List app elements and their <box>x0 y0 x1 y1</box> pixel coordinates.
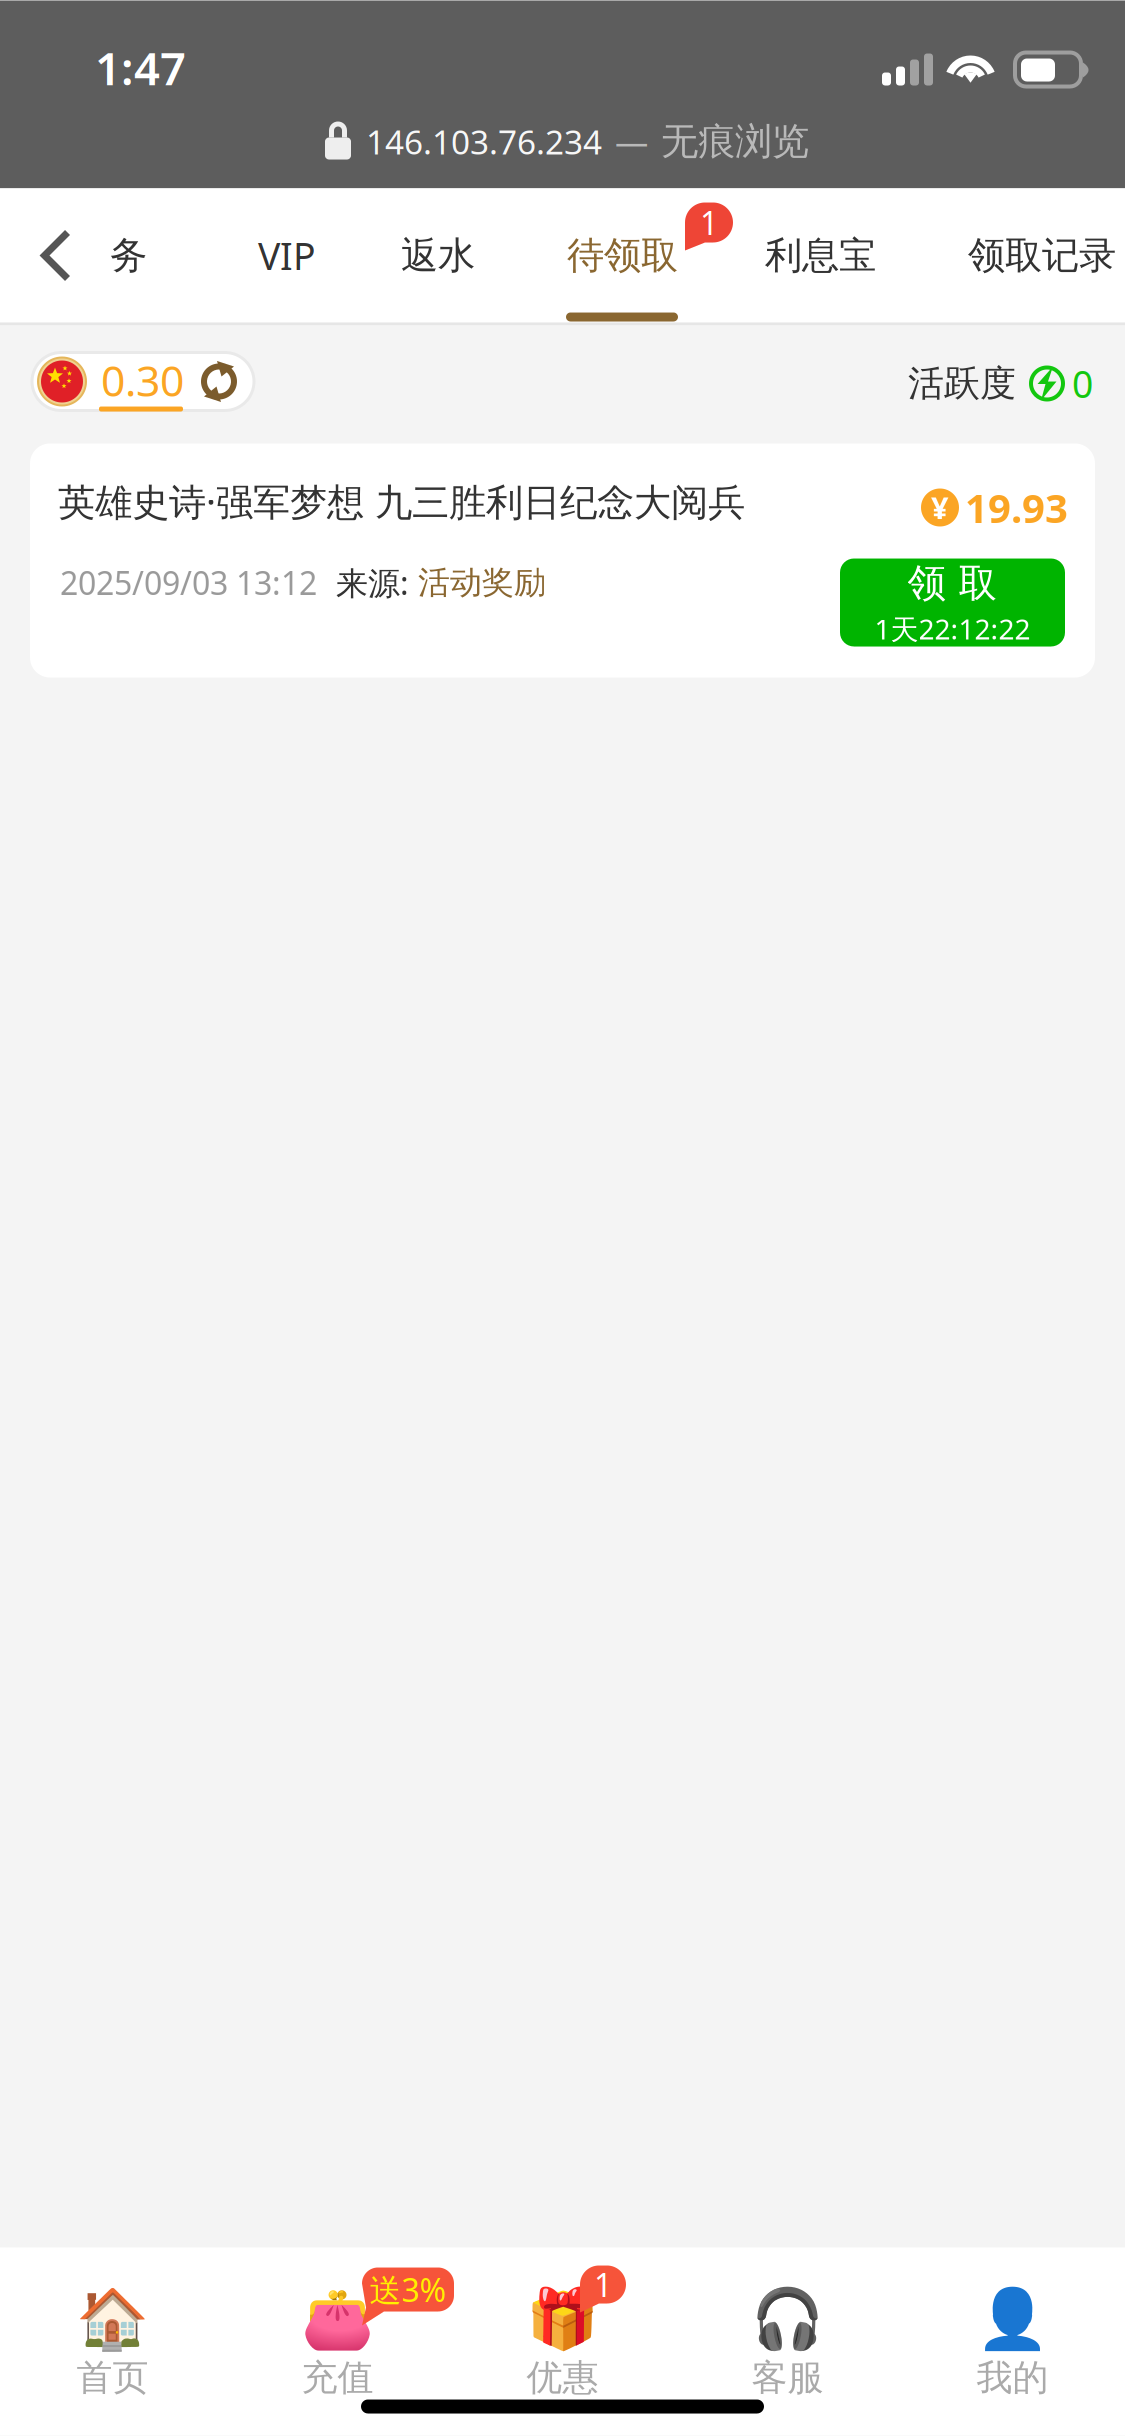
staticText: 146.103.76.234 <box>366 119 602 164</box>
button[interactable]: 领 取 <box>840 558 1065 646</box>
button[interactable]: 🎁 <box>450 2247 675 2435</box>
button[interactable]: 务 <box>110 188 147 322</box>
button[interactable]: 领取记录 <box>968 188 1116 322</box>
staticText: 0.30 <box>101 351 184 408</box>
staticText: 无痕浏览 <box>661 119 809 164</box>
staticText: 首页 <box>76 2355 148 2400</box>
staticText: 🏠 <box>76 2285 149 2352</box>
staticText: 优惠 <box>526 2355 598 2400</box>
staticText: 19.93 <box>965 481 1068 534</box>
staticText: 1天22:12:22 <box>874 610 1030 647</box>
staticText: 待领取 <box>567 233 678 278</box>
staticText: 充值 <box>301 2355 373 2400</box>
button[interactable]: 待领取 <box>567 188 678 322</box>
staticText: 🎧 <box>751 2285 824 2352</box>
staticText: 活跃度 <box>908 361 1016 406</box>
staticText: 👛 <box>301 2285 374 2352</box>
staticText: 活动奖励 <box>418 563 546 602</box>
staticText: 0 <box>1072 359 1093 408</box>
button[interactable]: 🏠 <box>0 2247 225 2435</box>
staticText: 英雄史诗·强军梦想 九三胜利日纪念大阅兵 <box>58 476 745 526</box>
staticText: 1 <box>700 201 718 244</box>
staticText: 客服 <box>751 2355 823 2400</box>
staticText: 🎁 <box>526 2285 599 2352</box>
staticText: 送3% <box>369 2268 446 2311</box>
staticText: 领取记录 <box>968 233 1116 278</box>
button[interactable]: 0.30 <box>32 352 254 410</box>
button[interactable]: 返水 <box>401 188 475 322</box>
staticText: 利息宝 <box>765 233 876 278</box>
button[interactable]: Back <box>18 188 94 322</box>
staticText: 👤 <box>976 2285 1049 2352</box>
staticText: 领 取 <box>907 560 997 607</box>
staticText: ¥ <box>931 487 949 528</box>
button[interactable]: 👛 <box>225 2247 450 2435</box>
staticText: VIP <box>258 231 316 280</box>
staticText: 1 <box>594 2263 612 2306</box>
staticText: 我的 <box>976 2355 1048 2400</box>
staticText: 返水 <box>401 233 475 278</box>
staticText: 务 <box>110 233 147 278</box>
button[interactable]: 👤 <box>900 2247 1125 2435</box>
staticText: — <box>615 119 648 164</box>
staticText: 2025/09/03 13:12 <box>60 561 317 604</box>
button[interactable]: VIP <box>258 188 316 322</box>
staticText: 来源: <box>336 561 409 604</box>
staticText: 1:47 <box>95 37 186 98</box>
button[interactable]: 🎧 <box>675 2247 900 2435</box>
button[interactable]: 利息宝 <box>765 188 876 322</box>
